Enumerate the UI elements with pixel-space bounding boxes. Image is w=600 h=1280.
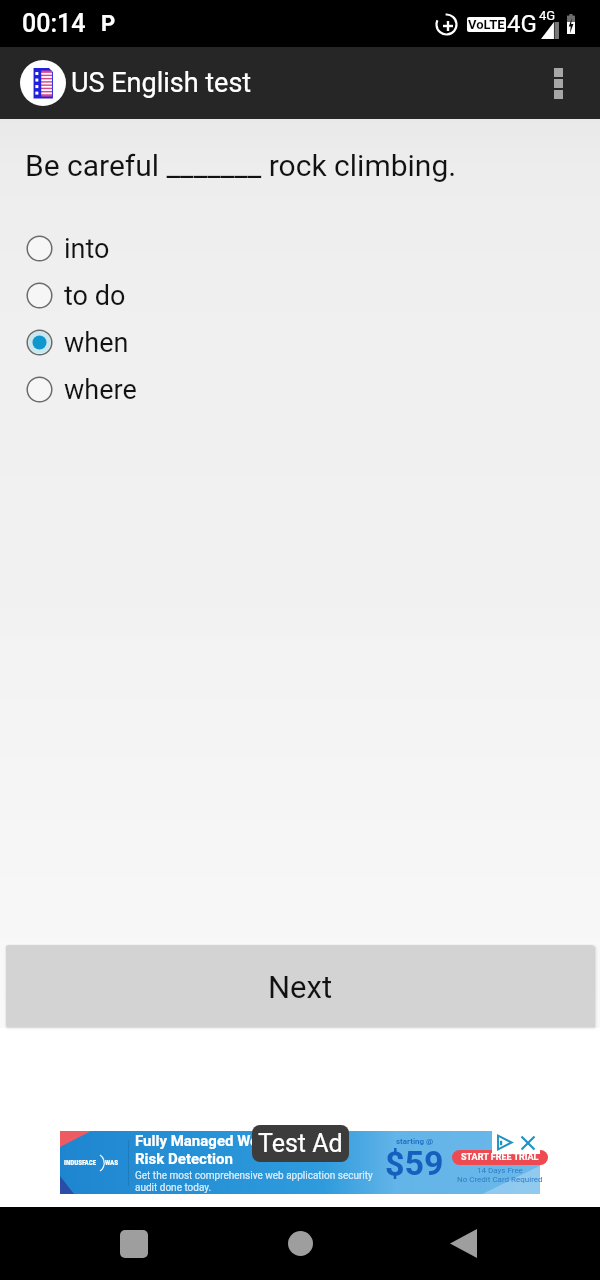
staticText: Risk Detection <box>135 1150 233 1168</box>
staticText: Fully Managed Web <box>135 1132 267 1150</box>
button[interactable]: Next <box>6 945 594 1027</box>
button[interactable]: when <box>0 319 600 366</box>
button[interactable]: Recents <box>94 1207 174 1280</box>
staticText: P <box>101 11 116 37</box>
button[interactable]: Home <box>260 1207 340 1280</box>
button[interactable]: to do <box>0 272 600 319</box>
staticText: 00:14 <box>22 9 86 38</box>
staticText: starting @ <box>396 1137 434 1146</box>
staticText: audit done today. <box>135 1182 212 1194</box>
staticText: when <box>64 327 129 359</box>
staticText: WAS <box>105 1159 119 1167</box>
staticText: where <box>64 374 137 406</box>
staticText: 4G <box>507 10 537 38</box>
staticText: Test Ad <box>258 1129 343 1158</box>
staticText: 4G <box>539 8 556 23</box>
staticText: 14 Days Free <box>477 1166 523 1175</box>
staticText: START FREE TRIAL <box>461 1152 539 1163</box>
staticText: No Credit Card Required <box>457 1175 543 1184</box>
staticText: Get the most comprehensive web applicati… <box>135 1170 373 1182</box>
button[interactable]: where <box>0 366 600 413</box>
staticText: INDUSFACE <box>64 1159 97 1167</box>
staticText: Be careful _______ rock climbing. <box>25 148 457 183</box>
staticText: Next <box>268 969 333 1005</box>
button[interactable]: Back <box>423 1207 503 1280</box>
staticText: $59 <box>385 1143 444 1183</box>
button[interactable]: More options <box>530 47 586 119</box>
button[interactable]: into <box>0 225 600 272</box>
button[interactable]: INDUSFACE <box>60 1131 540 1194</box>
staticText: VoLTE <box>468 17 505 32</box>
staticText: US English test <box>71 67 252 99</box>
staticText: to do <box>64 280 126 312</box>
staticText: into <box>64 233 110 265</box>
